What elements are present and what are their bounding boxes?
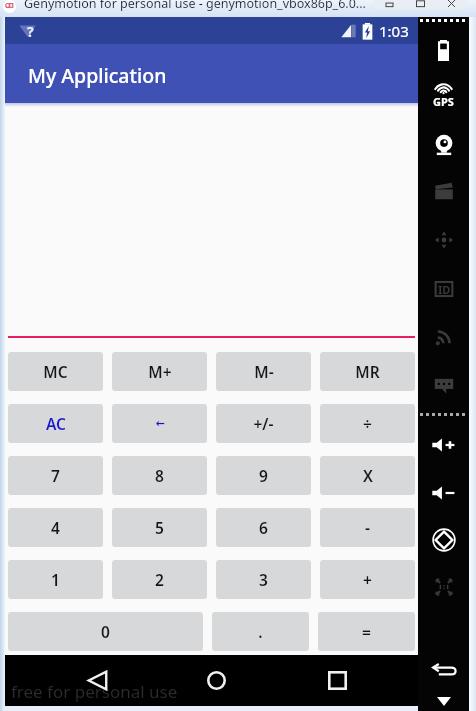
- button[interactable]: ←: [112, 404, 207, 443]
- button[interactable]: Volume down: [418, 470, 469, 516]
- staticText: 6: [259, 517, 268, 538]
- button[interactable]: Back: [73, 657, 121, 704]
- button[interactable]: GPS: [418, 73, 469, 119]
- staticText: ÷: [363, 413, 372, 434]
- button[interactable]: AC: [8, 404, 103, 443]
- button[interactable]: -: [320, 508, 415, 547]
- button[interactable]: 8: [112, 456, 207, 495]
- staticText: free for personal use: [11, 680, 178, 703]
- button[interactable]: +/-: [216, 404, 311, 443]
- button[interactable]: 9: [216, 456, 311, 495]
- button[interactable]: 7: [8, 456, 103, 495]
- staticText: 7: [51, 465, 60, 486]
- staticText: M+: [148, 361, 172, 382]
- button[interactable]: Battery: [418, 27, 469, 73]
- staticText: Genymotion for personal use - genymotion…: [24, 0, 366, 12]
- staticText: ?: [27, 22, 34, 41]
- button[interactable]: 3: [216, 560, 311, 599]
- staticText: =: [362, 621, 371, 642]
- button[interactable]: Back: [418, 647, 469, 693]
- staticText: 9: [259, 465, 268, 486]
- button[interactable]: Wi-Fi: [14, 17, 40, 43]
- button[interactable]: MC: [8, 352, 103, 391]
- staticText: 0: [101, 621, 110, 642]
- button[interactable]: Identifiers: [418, 266, 469, 312]
- staticText: MR: [355, 361, 380, 382]
- button[interactable]: Camera: [418, 122, 469, 168]
- button[interactable]: M-: [216, 352, 311, 391]
- staticText: ID: [438, 282, 451, 297]
- button[interactable]: max: [405, 0, 436, 9]
- button[interactable]: close: [436, 0, 467, 9]
- button[interactable]: 1: [8, 560, 103, 599]
- staticText: 1: [51, 569, 60, 590]
- button[interactable]: .: [212, 612, 309, 651]
- staticText: M-: [254, 361, 274, 382]
- button[interactable]: Recent apps: [313, 657, 361, 704]
- staticText: -: [365, 517, 370, 538]
- button[interactable]: Network: [418, 314, 469, 360]
- button[interactable]: ÷: [320, 404, 415, 443]
- button[interactable]: M+: [112, 352, 207, 391]
- staticText: .: [258, 621, 263, 642]
- button[interactable]: Volume up: [418, 422, 469, 468]
- staticText: 4: [51, 517, 60, 538]
- button[interactable]: 5: [112, 508, 207, 547]
- staticText: MC: [43, 361, 68, 382]
- button[interactable]: 2: [112, 560, 207, 599]
- staticText: 8: [155, 465, 164, 486]
- button[interactable]: 0: [8, 612, 203, 651]
- staticText: X: [363, 465, 373, 486]
- staticText: +/-: [253, 413, 274, 434]
- staticText: ←: [155, 417, 165, 430]
- staticText: 2: [155, 569, 164, 590]
- button[interactable]: Home: [192, 657, 240, 704]
- button[interactable]: Zoom one to one: [418, 564, 469, 610]
- staticText: 3: [259, 569, 268, 590]
- staticText: My Application: [28, 62, 167, 89]
- button[interactable]: =: [318, 612, 415, 651]
- staticText: GPS: [433, 94, 454, 109]
- button[interactable]: 4: [8, 508, 103, 547]
- button[interactable]: 6: [216, 508, 311, 547]
- button[interactable]: More: [418, 678, 469, 711]
- staticText: 1:03: [379, 21, 409, 41]
- staticText: +: [363, 569, 372, 590]
- staticText: 5: [155, 517, 164, 538]
- button[interactable]: X: [320, 456, 415, 495]
- button[interactable]: MR: [320, 352, 415, 391]
- button[interactable]: min: [374, 0, 405, 9]
- button[interactable]: Messages: [418, 362, 469, 408]
- button[interactable]: Move: [418, 217, 469, 263]
- staticText: AC: [46, 413, 66, 434]
- button[interactable]: +: [320, 560, 415, 599]
- button[interactable]: Video recorder: [418, 169, 469, 215]
- button[interactable]: Rotate: [418, 517, 469, 563]
